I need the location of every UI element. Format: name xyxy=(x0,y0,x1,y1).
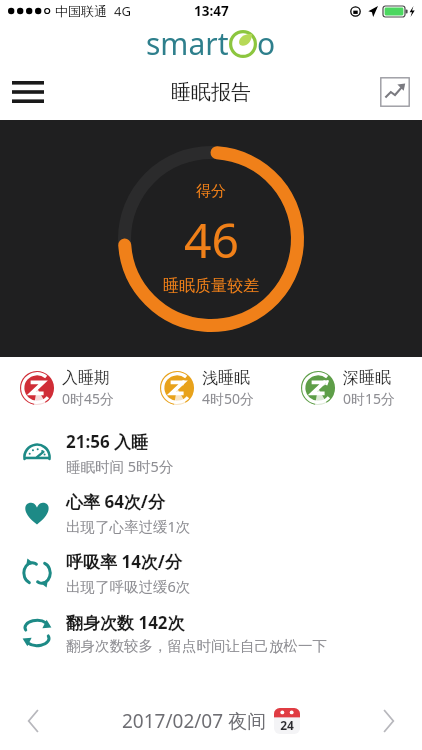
staticText: 2017/02/07 夜间 xyxy=(122,708,267,734)
button[interactable]: 心率 64次/分 xyxy=(0,483,422,543)
button[interactable]: Next day xyxy=(368,701,408,741)
staticText: 出现了呼吸过缓6次 xyxy=(66,576,191,596)
button[interactable]: Trends xyxy=(378,75,412,109)
staticText: 翻身次数较多，留点时间让自己放松一下 xyxy=(66,637,327,655)
staticText: 0时15分 xyxy=(343,389,396,408)
staticText: 入睡期 xyxy=(62,368,110,388)
staticText: 睡眠质量较差 xyxy=(163,276,259,296)
staticText: 4G xyxy=(114,2,131,20)
staticText: 深睡眠 xyxy=(343,368,391,388)
staticText: 46 xyxy=(184,207,239,272)
staticText: 呼吸率 14次/分 xyxy=(66,550,182,573)
staticText: 心率 64次/分 xyxy=(66,490,165,513)
button[interactable]: 翻身次数 142次 xyxy=(0,603,422,663)
staticText: 21:56 入睡 xyxy=(66,430,149,453)
button[interactable]: Menu xyxy=(6,70,50,114)
staticText: o xyxy=(257,23,276,64)
button[interactable]: 2017/02/07 夜间 xyxy=(122,708,300,734)
staticText: smart xyxy=(146,23,229,64)
button[interactable]: Previous day xyxy=(14,701,54,741)
button[interactable]: 呼吸率 14次/分 xyxy=(0,543,422,603)
staticText: 13:47 xyxy=(194,2,229,20)
staticText: 睡眠时间 5时5分 xyxy=(66,456,174,476)
staticText: 翻身次数 142次 xyxy=(66,611,185,634)
staticText: 出现了心率过缓1次 xyxy=(66,516,191,536)
staticText: 睡眠报告 xyxy=(171,80,251,105)
staticText: 4时50分 xyxy=(202,389,255,408)
staticText: 0时45分 xyxy=(62,389,115,408)
button[interactable]: 浅睡眠 xyxy=(160,368,281,408)
button[interactable]: 入睡期 xyxy=(20,368,140,408)
button[interactable]: 深睡眠 xyxy=(301,368,422,408)
staticText: 得分 xyxy=(196,182,226,201)
button[interactable]: 21:56 入睡 xyxy=(0,423,422,483)
staticText: 中国联通 xyxy=(55,3,107,19)
staticText: 浅睡眠 xyxy=(202,368,250,388)
staticText: 24 xyxy=(280,717,294,733)
